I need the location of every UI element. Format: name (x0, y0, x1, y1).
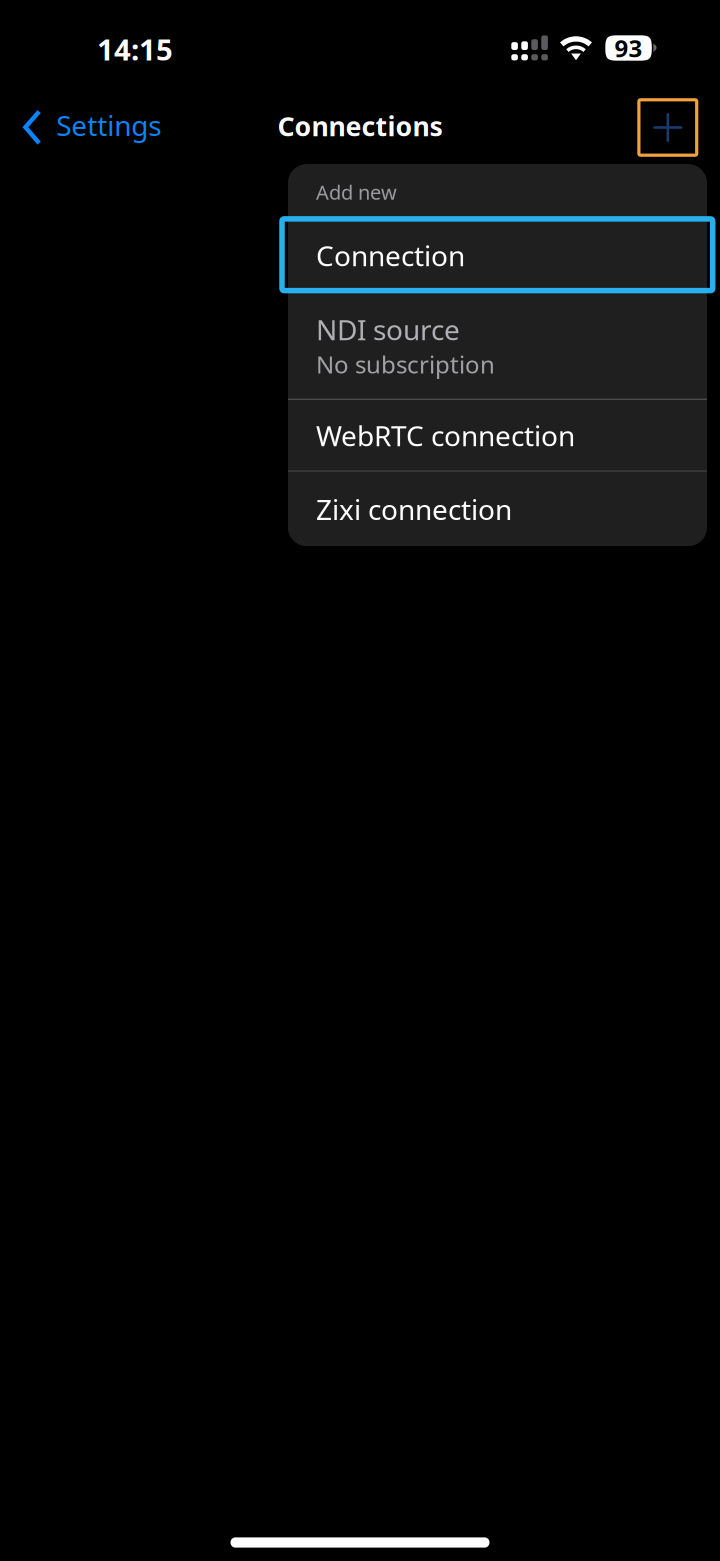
staticText: Add new (316, 179, 397, 205)
button[interactable]: Zixi connection (288, 471, 707, 546)
button[interactable]: NDI source (288, 289, 707, 400)
staticText: Zixi connection (316, 491, 512, 528)
staticText: 93 (614, 32, 642, 64)
button[interactable]: Add (639, 100, 697, 155)
staticText: WebRTC connection (316, 417, 575, 454)
button[interactable]: WebRTC connection (288, 400, 707, 471)
staticText: NDI source (316, 311, 460, 348)
staticText: Connections (277, 108, 442, 144)
staticText: Settings (56, 107, 161, 144)
button[interactable]: Settings (0, 97, 158, 161)
staticText: 14:15 (97, 29, 173, 68)
staticText: No subscription (316, 348, 495, 380)
button[interactable]: Connection (288, 216, 707, 289)
staticText: Connection (316, 237, 465, 274)
